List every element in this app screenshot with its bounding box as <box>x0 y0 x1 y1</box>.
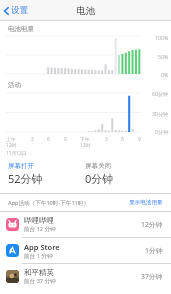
staticText: 6 <box>47 136 50 143</box>
staticText: 3 <box>31 136 34 143</box>
staticText: 9 <box>138 136 141 143</box>
staticText: App Store <box>24 242 60 252</box>
other: Back <box>4 7 9 15</box>
staticText: 50% <box>158 53 169 60</box>
staticText: 屏幕关闭 <box>85 162 111 170</box>
staticText: 电池 <box>76 5 95 17</box>
staticText: 前台 1 分钟 <box>24 252 53 260</box>
staticText: 前台 12 分钟 <box>24 225 56 233</box>
staticText: 上午 12时 <box>6 136 17 149</box>
staticText: 11月12日 <box>6 150 27 157</box>
staticText: 屏幕打开 <box>8 162 34 170</box>
staticText: 52分钟 <box>8 171 43 186</box>
staticText: 0分钟 <box>155 128 169 135</box>
staticText: 37分钟 <box>141 272 163 281</box>
staticText: 60分钟 <box>152 90 169 97</box>
staticText: 6 <box>121 136 124 143</box>
staticText: 活动 <box>8 81 21 89</box>
staticText: 和平精英 <box>24 268 54 277</box>
staticText: 9 <box>64 136 67 143</box>
staticText: 设置 <box>11 5 28 16</box>
button[interactable]: 哔哩哔哩 <box>0 212 171 237</box>
button[interactable]: Back <box>0 1 34 20</box>
staticText: 前台 37 分钟 <box>24 277 56 285</box>
staticText: 3 <box>105 136 108 143</box>
staticText: 30分钟 <box>152 110 169 117</box>
button[interactable]: 显示电池用量 <box>127 196 165 209</box>
button[interactable]: 和平精英 <box>0 264 171 289</box>
staticText: 下午 12时 <box>80 136 91 149</box>
staticText: 12分钟 <box>141 220 163 229</box>
staticText: 0分钟 <box>85 171 114 186</box>
staticText: 1分钟 <box>145 246 163 255</box>
staticText: 显示电池用量 <box>129 199 163 206</box>
staticText: App活动（下午10时-下午11时） <box>8 199 127 207</box>
staticText: 电池电量 <box>8 25 34 33</box>
staticText: 0% <box>161 71 169 78</box>
staticText: 100% <box>155 34 169 41</box>
staticText: 哔哩哔哩 <box>24 216 54 225</box>
button[interactable]: App Store <box>0 238 171 263</box>
